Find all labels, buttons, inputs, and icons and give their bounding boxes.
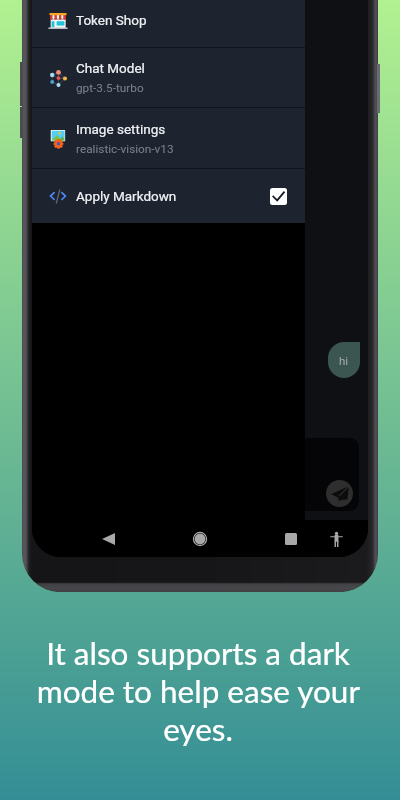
button[interactable]: Send xyxy=(326,480,353,507)
staticText: Apply Markdown xyxy=(76,188,177,204)
button[interactable]: Recent apps xyxy=(275,523,307,555)
button[interactable]: Chat Model xyxy=(32,48,305,107)
button[interactable]: Home xyxy=(184,523,216,555)
button[interactable]: hi xyxy=(328,342,360,378)
staticText: It also supports a dark mode to help eas… xyxy=(26,634,370,748)
button[interactable]: Apply Markdown checkbox xyxy=(270,188,287,205)
staticText: Token Shop xyxy=(76,12,147,28)
staticText: gpt-3.5-turbo xyxy=(76,81,144,95)
button[interactable]: Token Shop xyxy=(32,0,305,47)
button[interactable]: Image settings xyxy=(32,108,305,168)
button[interactable]: Accessibility xyxy=(320,523,352,555)
staticText: realistic-vision-v13 xyxy=(76,142,174,156)
staticText: hi xyxy=(339,354,349,367)
staticText: Chat Model xyxy=(76,60,145,76)
staticText: Image settings xyxy=(76,121,166,137)
button[interactable]: Apply Markdown xyxy=(32,169,305,223)
button[interactable]: Back xyxy=(92,523,124,555)
